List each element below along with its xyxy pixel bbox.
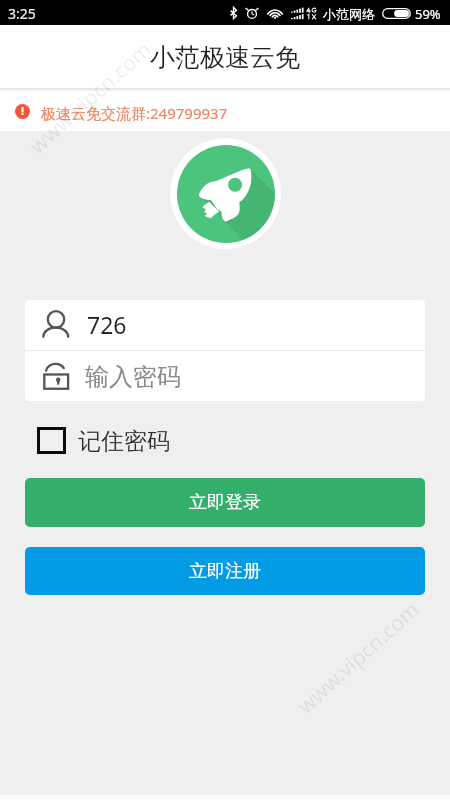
button[interactable]: 726 (25, 300, 425, 350)
staticText: 小范网络 (323, 6, 375, 22)
staticText: 59% (415, 5, 441, 23)
staticText: 立即注册 (189, 560, 261, 583)
button[interactable]: 立即登录 (25, 478, 425, 527)
staticText: 极速云免交流群:249799937 (41, 103, 228, 123)
staticText: 小范极速云免 (150, 42, 300, 73)
button[interactable]: 输入密码 (25, 351, 425, 401)
button[interactable]: 立即注册 (25, 547, 425, 595)
staticText: 输入密码 (85, 362, 181, 392)
staticText: ! (21, 104, 25, 118)
staticText: 记住密码 (78, 427, 170, 456)
button[interactable]: 记住密码 (37, 426, 170, 455)
staticText: 726 (87, 309, 127, 340)
staticText: 3:25 (8, 4, 36, 23)
staticText: 立即登录 (189, 491, 261, 514)
button[interactable]: ! (0, 92, 450, 131)
staticText: www.vipcn.com (23, 35, 158, 160)
